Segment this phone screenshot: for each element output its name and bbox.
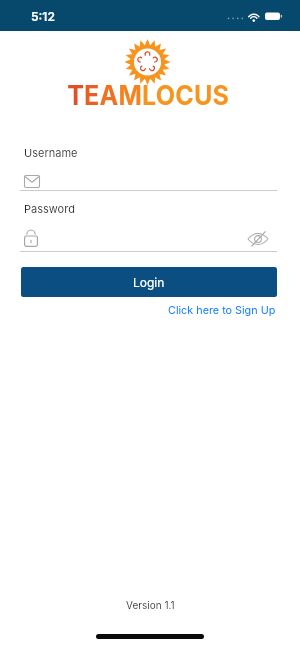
button[interactable]	[247, 230, 269, 247]
staticText: Password	[24, 202, 75, 215]
button[interactable]: Login	[21, 267, 277, 297]
staticText: Login	[133, 275, 165, 290]
staticText: Username	[24, 146, 78, 159]
staticText: Version 1.1	[126, 599, 175, 611]
staticText: TEAMLOCUS	[67, 79, 230, 112]
button[interactable]	[20, 228, 277, 252]
button[interactable]	[20, 168, 277, 191]
staticText: 5:12	[31, 9, 55, 24]
button[interactable]: Click here to Sign Up	[168, 304, 276, 317]
